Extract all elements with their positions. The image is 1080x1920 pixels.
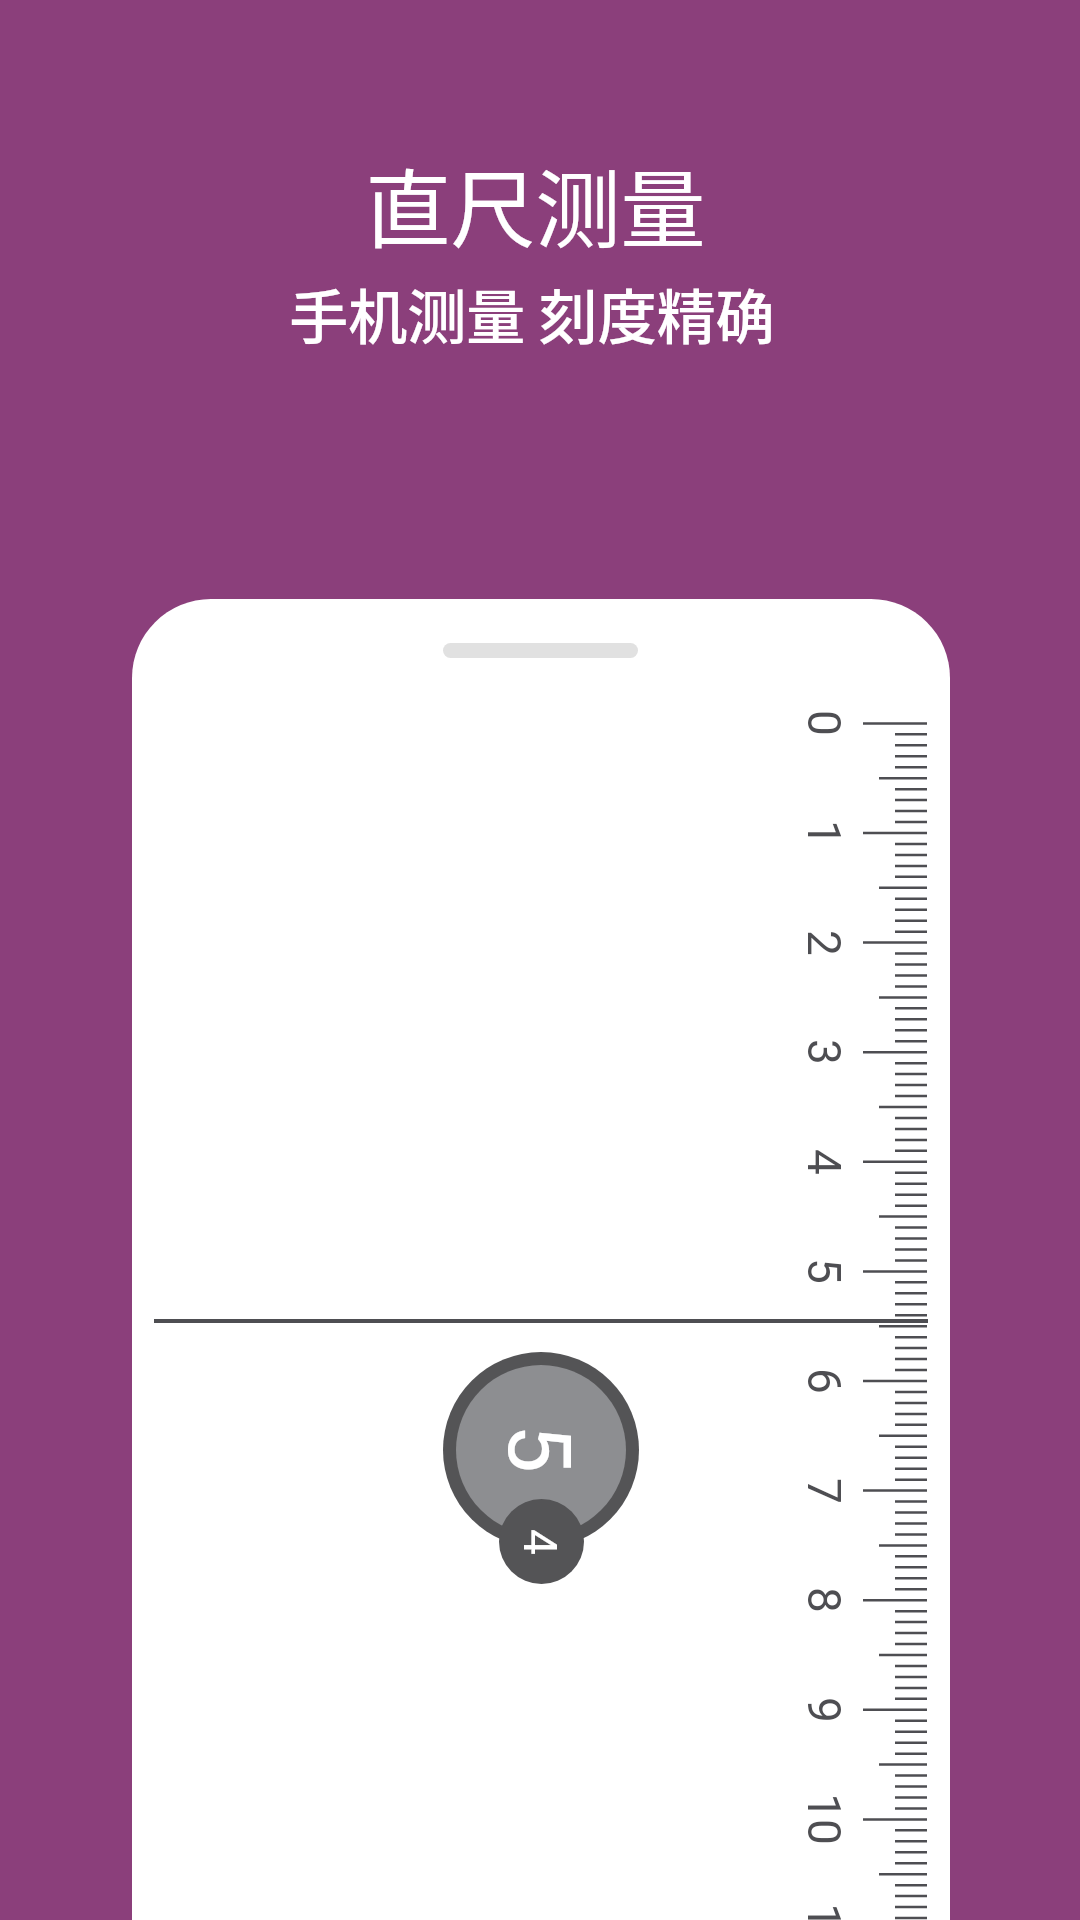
button[interactable]: Secondary measurement: [499, 1499, 584, 1584]
staticText: 3: [797, 1039, 851, 1065]
staticText: 直尺测量: [365, 142, 706, 265]
staticText: 8: [797, 1587, 851, 1613]
staticText: 10: [797, 1793, 851, 1845]
staticText: 2: [797, 930, 851, 956]
staticText: 9: [797, 1697, 851, 1723]
staticText: 7: [797, 1478, 851, 1504]
staticText: 1: [797, 820, 851, 846]
staticText: 0: [797, 710, 851, 736]
staticText: 手机测量 刻度精确: [289, 271, 775, 356]
staticText: 5: [797, 1258, 851, 1284]
button[interactable]: Measurement value: [443, 1352, 639, 1548]
staticText: 4: [797, 1149, 851, 1175]
staticText: 4: [517, 1529, 567, 1555]
staticText: 11: [797, 1903, 851, 1920]
staticText: 5: [488, 1424, 590, 1473]
staticText: 6: [797, 1368, 851, 1394]
